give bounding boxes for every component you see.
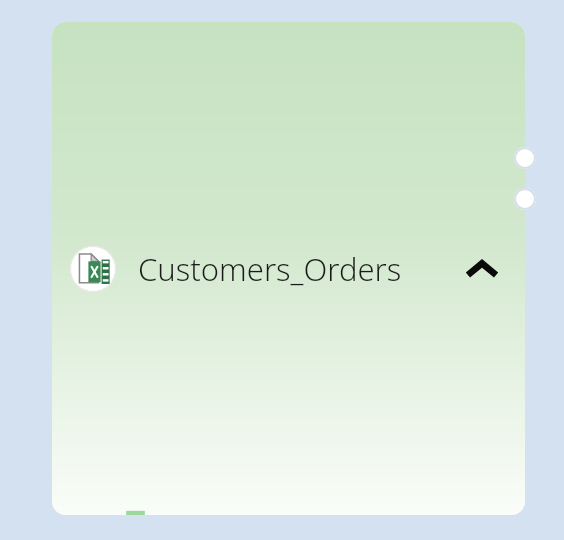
button[interactable]: Connection point: [514, 147, 536, 169]
button[interactable]: Connection point: [514, 188, 536, 210]
button[interactable]: Customers_Orders: [52, 22, 525, 515]
staticText: Customers_Orders: [138, 248, 402, 290]
button[interactable]: Collapse: [455, 242, 509, 296]
